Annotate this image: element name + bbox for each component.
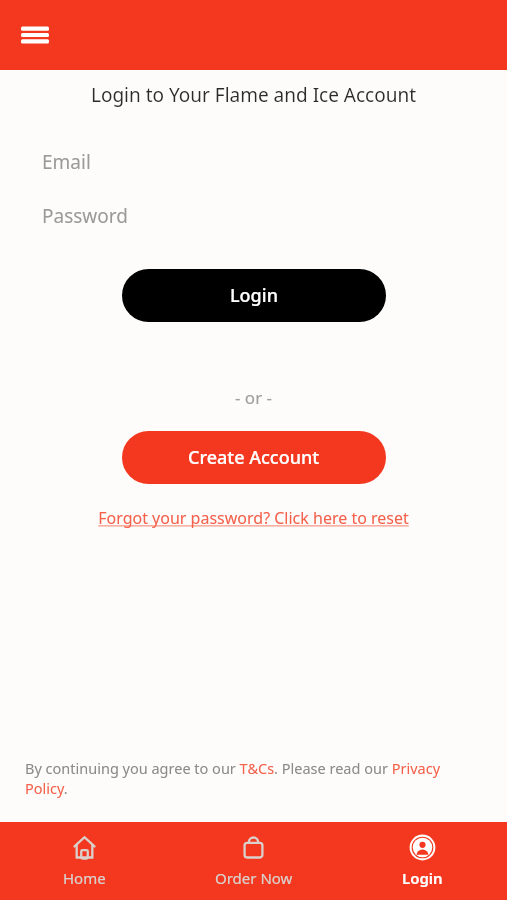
button[interactable]: Login — [122, 269, 386, 322]
staticText: Email — [42, 149, 91, 175]
staticText: Login — [230, 283, 278, 308]
staticText: Home — [63, 868, 106, 888]
button[interactable]: Order Now — [169, 822, 338, 900]
button[interactable]: Open navigation menu — [14, 14, 56, 56]
staticText: Forgot your password? Click here to rese… — [98, 507, 409, 529]
staticText: Login to Your Flame and Ice Account — [0, 82, 507, 108]
staticText: Login — [402, 868, 443, 888]
button[interactable]: Password — [0, 199, 507, 233]
button[interactable]: Forgot your password? Click here to rese… — [0, 507, 507, 529]
button[interactable]: Create Account — [122, 431, 386, 484]
staticText: - or - — [0, 386, 507, 409]
button[interactable]: Login — [338, 822, 507, 900]
button[interactable]: Email — [0, 145, 507, 179]
staticText: Create Account — [188, 445, 320, 470]
button[interactable]: Home — [0, 822, 169, 900]
staticText: Order Now — [215, 868, 293, 888]
staticText: Password — [42, 203, 128, 229]
button[interactable]: By continuing you agree to our T&Cs. Ple… — [0, 758, 507, 798]
